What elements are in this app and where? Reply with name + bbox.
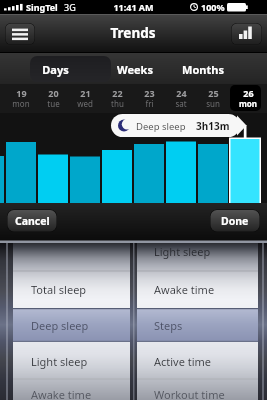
staticText: wed: [77, 98, 93, 109]
staticText: Awake time: [31, 387, 92, 400]
staticText: 3h13m: [196, 119, 230, 133]
staticText: Steps: [154, 318, 183, 333]
staticText: 3G: [64, 1, 76, 13]
staticText: sat: [175, 98, 187, 109]
button[interactable]: Done: [210, 209, 260, 232]
button[interactable]: [136, 343, 258, 379]
staticText: Workout time: [154, 387, 225, 400]
staticText: tue: [47, 98, 60, 109]
button[interactable]: [165, 85, 197, 112]
staticText: mon: [12, 98, 30, 109]
staticText: thu: [111, 98, 124, 109]
staticText: Light sleep: [154, 244, 211, 259]
staticText: 26: [243, 87, 254, 99]
staticText: Awake time: [154, 282, 215, 297]
staticText: 22: [112, 87, 123, 99]
button[interactable]: Days: [9, 56, 101, 82]
button[interactable]: [13, 343, 130, 379]
button[interactable]: [37, 85, 69, 112]
staticText: 100%: [201, 1, 225, 13]
staticText: SingTel: [26, 1, 58, 13]
button[interactable]: Weeks: [105, 56, 165, 82]
staticText: 25: [208, 87, 219, 99]
staticText: Months: [182, 62, 224, 77]
staticText: fri: [145, 98, 154, 109]
button[interactable]: [69, 85, 101, 112]
button[interactable]: [197, 85, 229, 112]
staticText: 20: [48, 87, 59, 99]
staticText: sun: [206, 98, 220, 109]
button[interactable]: [231, 23, 262, 45]
button[interactable]: [133, 85, 165, 112]
staticText: 24: [176, 87, 187, 99]
staticText: Deep sleep: [136, 120, 186, 133]
button[interactable]: Months: [173, 56, 233, 82]
button[interactable]: [232, 85, 264, 112]
staticText: Active time: [154, 354, 212, 369]
staticText: 11:41 AM: [113, 1, 154, 13]
button[interactable]: [101, 85, 133, 112]
button[interactable]: [13, 271, 130, 307]
staticText: Light sleep: [31, 354, 88, 369]
button[interactable]: [136, 271, 258, 307]
staticText: Days: [42, 62, 69, 77]
staticText: Cancel: [15, 214, 50, 228]
staticText: mon: [239, 98, 257, 109]
staticText: 21: [80, 87, 91, 99]
staticText: 23: [144, 87, 155, 99]
staticText: Deep sleep: [31, 318, 89, 333]
staticText: Trends: [110, 24, 156, 42]
staticText: 19: [16, 87, 27, 99]
button[interactable]: [136, 307, 258, 343]
staticText: Done: [221, 214, 249, 228]
button[interactable]: [5, 23, 35, 45]
button[interactable]: [5, 85, 37, 112]
staticText: Weeks: [117, 62, 153, 77]
staticText: Total sleep: [31, 282, 87, 297]
button[interactable]: Cancel: [7, 209, 57, 232]
button[interactable]: [13, 307, 130, 343]
